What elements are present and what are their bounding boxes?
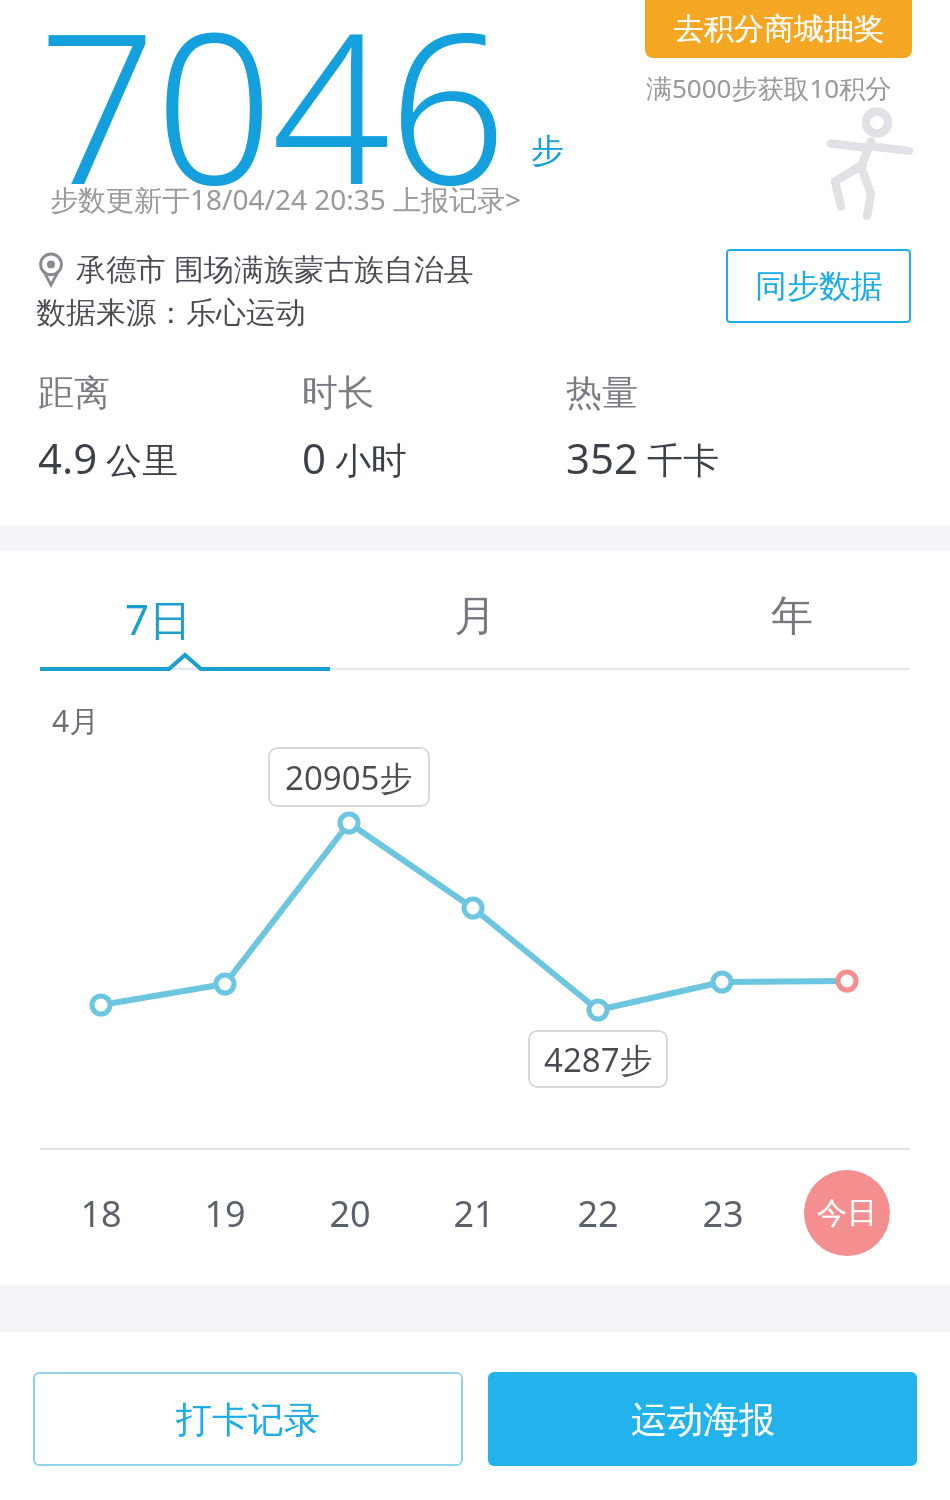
staticText: 公里 bbox=[106, 438, 178, 483]
staticText: 22 bbox=[577, 1189, 619, 1238]
button[interactable]: 19 bbox=[185, 1180, 265, 1246]
staticText: 今日 bbox=[817, 1194, 877, 1232]
staticText: 月 bbox=[454, 590, 496, 643]
staticText: 承德市 围场满族蒙古族自治县 bbox=[76, 248, 474, 289]
staticText: 距离 bbox=[38, 370, 110, 415]
staticText: 20905步 bbox=[285, 755, 413, 800]
staticText: 满5000步获取10积分 bbox=[646, 70, 892, 106]
button[interactable]: 年 bbox=[633, 590, 950, 643]
staticText: 运动海报 bbox=[631, 1397, 775, 1442]
staticText: 21 bbox=[453, 1189, 495, 1238]
staticText: 4.9 bbox=[38, 429, 98, 486]
staticText: 7046 bbox=[38, 0, 506, 245]
button[interactable]: 同步数据 bbox=[726, 249, 911, 323]
button[interactable]: 20 bbox=[310, 1180, 390, 1246]
staticText: 数据来源：乐心运动 bbox=[36, 294, 306, 332]
button[interactable]: 打卡记录 bbox=[33, 1372, 463, 1466]
staticText: 年 bbox=[771, 590, 813, 643]
button[interactable]: 热量 bbox=[566, 370, 719, 486]
staticText: 4月 bbox=[52, 700, 100, 741]
button[interactable]: 去积分商城抽奖 bbox=[645, 0, 912, 58]
button[interactable]: 21 bbox=[434, 1180, 514, 1246]
staticText: 4287步 bbox=[544, 1037, 653, 1082]
button[interactable]: 月 bbox=[316, 590, 633, 643]
staticText: 时长 bbox=[302, 370, 374, 415]
staticText: 小时 bbox=[335, 438, 407, 483]
staticText: 去积分商城抽奖 bbox=[674, 10, 884, 48]
staticText: 352 bbox=[566, 429, 639, 486]
staticText: 0 bbox=[302, 429, 327, 486]
button[interactable]: 距离 bbox=[38, 370, 178, 486]
staticText: 热量 bbox=[566, 370, 638, 415]
button[interactable]: 22 bbox=[558, 1180, 638, 1246]
button[interactable]: 18 bbox=[61, 1180, 141, 1246]
other: Location bbox=[38, 253, 64, 285]
button[interactable]: 步数更新于18/04/24 20:35 上报记录> bbox=[50, 180, 522, 218]
other: Running bbox=[815, 112, 915, 217]
staticText: 打卡记录 bbox=[176, 1397, 320, 1442]
staticText: 7日 bbox=[125, 590, 192, 647]
button[interactable]: 今日 bbox=[804, 1170, 890, 1256]
staticText: 同步数据 bbox=[755, 266, 883, 306]
staticText: 18 bbox=[80, 1189, 122, 1238]
button[interactable]: 23 bbox=[683, 1180, 763, 1246]
staticText: 23 bbox=[702, 1189, 744, 1238]
staticText: 步 bbox=[531, 130, 564, 172]
staticText: 19 bbox=[204, 1189, 246, 1238]
staticText: 千卡 bbox=[647, 438, 719, 483]
button[interactable]: 7日 bbox=[0, 590, 316, 647]
button[interactable]: 时长 bbox=[302, 370, 407, 486]
button[interactable]: 运动海报 bbox=[488, 1372, 917, 1466]
staticText: 20 bbox=[329, 1189, 371, 1238]
